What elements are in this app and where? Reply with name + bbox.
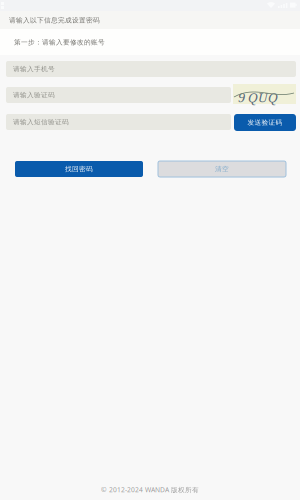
staticText: 请输入短信验证码	[13, 118, 69, 126]
staticText: 请输入手机号	[13, 65, 55, 73]
button[interactable]: 找回密码	[15, 161, 143, 177]
staticText: 第一步：请输入要修改的账号	[14, 38, 105, 46]
staticText: © 2012-2024 WANDA 版权所有	[101, 485, 199, 494]
staticText: 找回密码	[65, 165, 93, 173]
staticText: 发送验证码	[247, 118, 282, 127]
button[interactable]: 发送验证码	[234, 114, 296, 131]
staticText: 请输入以下信息完成设置密码	[9, 16, 100, 24]
staticText: 9 QUQ	[238, 88, 278, 106]
staticText: 清空	[215, 165, 229, 173]
staticText: 请输入验证码	[13, 91, 55, 99]
button[interactable]: 清空	[158, 161, 286, 177]
